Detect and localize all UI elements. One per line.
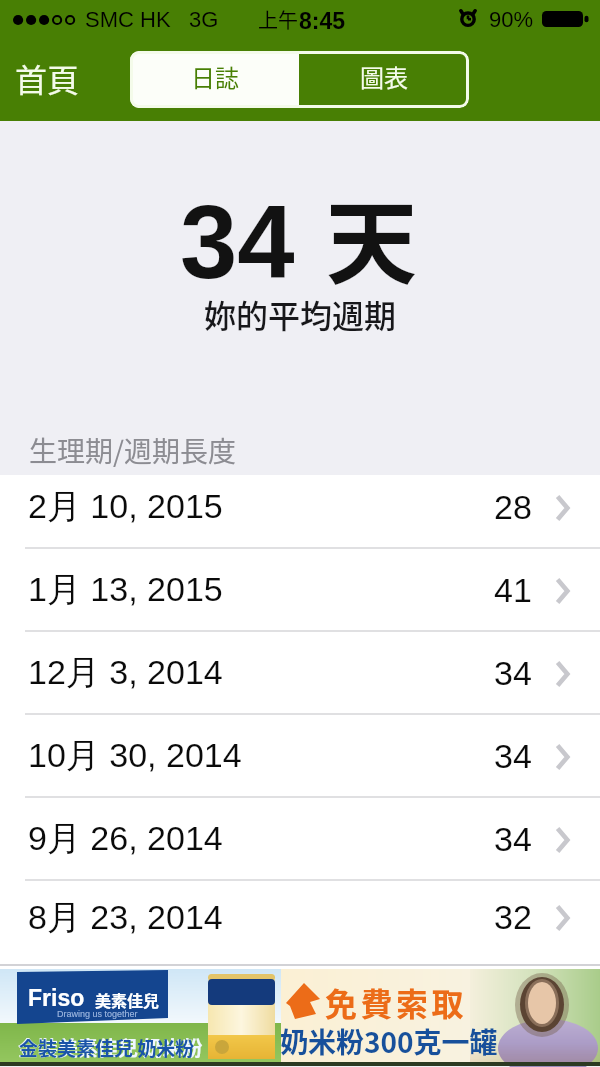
staticText: 9月 26, 2014 [28,817,223,860]
staticText: 3G [189,7,219,32]
button[interactable]: 10月 30, 2014 [0,715,600,798]
button[interactable]: Advertisement banner [0,969,600,1066]
button[interactable]: 圖表 [299,51,469,108]
staticText: 32 [494,898,532,936]
staticText: 生理期/週期長度 [29,430,236,471]
other: Signal strength [13,14,76,26]
staticText: Friso [28,985,85,1011]
staticText: 金裝美素佳兒 奶米粉 [19,1034,195,1062]
staticText: 妳的平均週期 [204,291,397,337]
staticText: 41 [494,571,532,609]
staticText: 8月 23, 2014 [28,896,223,939]
staticText: 日誌 [191,59,239,94]
staticText: 免費索取 [325,979,468,1025]
staticText: 10月 30, 2014 [28,734,242,777]
staticText: 1月 13, 2015 [28,568,223,611]
staticText: Drawing us together [57,1009,138,1019]
staticText: 金裝美素佳兒 奶米粉 [18,1033,203,1062]
staticText: 34 [180,185,295,300]
staticText: 圖表 [360,59,408,94]
staticText: 首頁 [15,55,80,101]
button[interactable]: 日誌 [130,51,299,108]
button[interactable]: 9月 26, 2014 [0,798,600,881]
staticText: 美素佳兒 [95,988,160,1011]
staticText: 上午 [258,5,298,34]
staticText: SMC HK [85,7,171,32]
staticText: 天 [326,170,418,302]
button[interactable]: Back to home [3,49,92,107]
other: Alarm set [460,10,476,26]
staticText: 34 [494,654,532,692]
button[interactable]: 1月 13, 2015 [0,549,600,632]
button[interactable]: 8月 23, 2014 [0,881,600,955]
staticText: 12月 3, 2014 [28,651,223,694]
other: Battery 90 percent [542,11,588,27]
button[interactable]: 12月 3, 2014 [0,632,600,715]
staticText: 8:45 [299,8,346,34]
staticText: 34 [494,820,532,858]
staticText: 90% [489,7,534,32]
button[interactable]: 2月 10, 2015 [0,475,600,549]
staticText: 34 [494,737,532,775]
staticText: 2月 10, 2015 [28,485,223,528]
staticText: 奶米粉300克一罐 [280,1021,498,1062]
staticText: 28 [494,488,532,526]
